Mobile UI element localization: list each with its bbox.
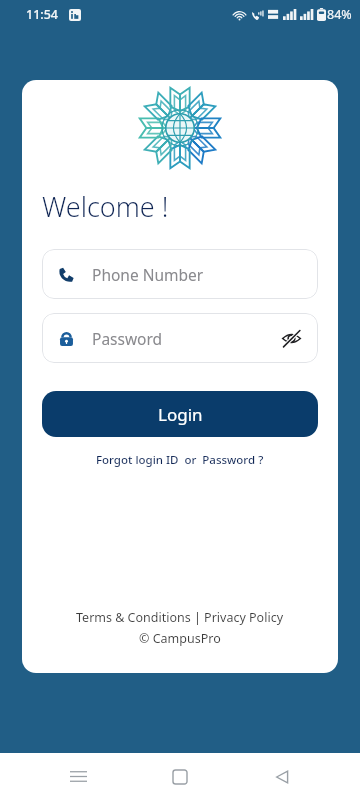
staticText: Forgot login ID or Password ? [96, 452, 264, 468]
other: Password [58, 330, 75, 347]
button[interactable]: Show password [281, 328, 302, 349]
button[interactable]: Home [156, 753, 204, 800]
staticText: Terms & Conditions | Privacy Policy [76, 609, 284, 626]
button[interactable]: Login [42, 391, 318, 437]
button[interactable]: Recent apps [54, 753, 102, 800]
staticText: Login [158, 403, 203, 426]
button[interactable]: Terms & Conditions | Privacy Policy [72, 607, 288, 628]
staticText: 84% [327, 6, 352, 23]
other: Phone [58, 266, 75, 283]
staticText: Password [92, 328, 163, 349]
staticText: Phone Number [92, 264, 204, 285]
button[interactable]: Back [258, 753, 306, 800]
staticText: © CampusPro [139, 630, 221, 647]
button[interactable]: Forgot login ID or Password ? [90, 449, 270, 471]
staticText: Welcome ! [42, 188, 169, 225]
button[interactable]: Password [42, 313, 318, 363]
staticText: 11:54 [26, 6, 59, 23]
button[interactable]: Phone [42, 249, 318, 299]
